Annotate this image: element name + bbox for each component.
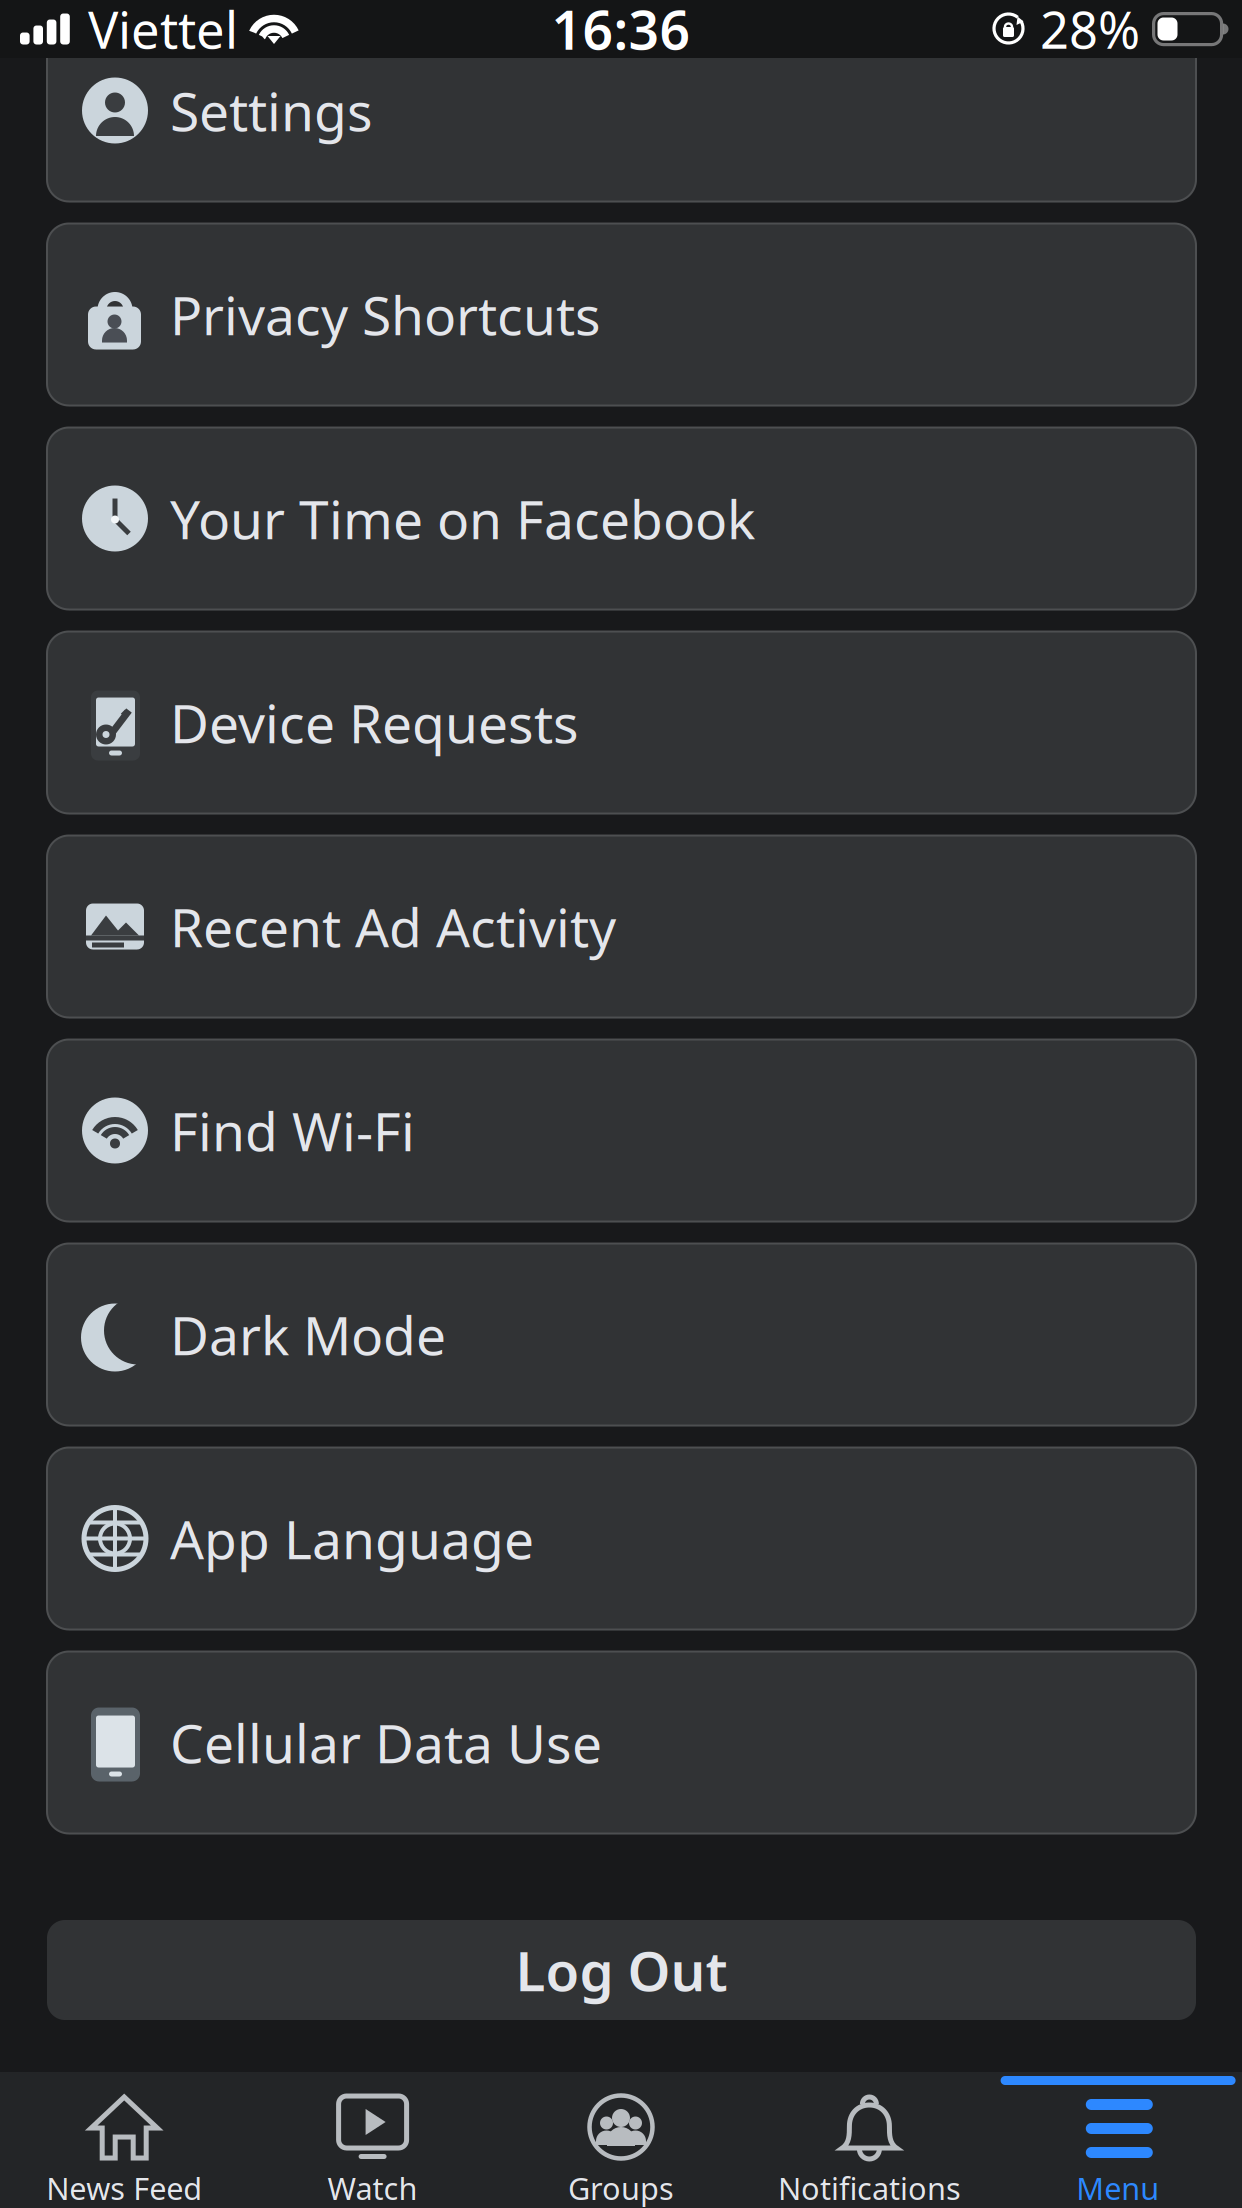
button[interactable]: Privacy Shortcuts — [47, 223, 1196, 405]
staticText: 16:36 — [551, 0, 690, 64]
staticText: 28% — [1040, 0, 1140, 63]
staticText: Log Out — [515, 1934, 727, 2006]
button[interactable]: Groups — [497, 2072, 745, 2208]
button[interactable]: News Feed — [0, 2072, 248, 2208]
button[interactable]: Find Wi-Fi — [47, 1039, 1196, 1221]
button[interactable]: Dark Mode — [47, 1243, 1196, 1425]
staticText: Groups — [568, 2168, 674, 2208]
staticText: Cellular Data Use — [170, 1707, 602, 1778]
staticText: App Language — [170, 1503, 534, 1574]
button[interactable]: Settings — [47, 19, 1196, 201]
staticText: Viettel — [88, 0, 238, 63]
staticText: News Feed — [46, 2168, 202, 2208]
button[interactable]: Your Time on Facebook — [47, 427, 1196, 609]
staticText: Recent Ad Activity — [170, 891, 616, 962]
staticText: Dark Mode — [170, 1299, 446, 1370]
staticText: Device Requests — [170, 687, 579, 758]
button[interactable]: Notifications — [745, 2072, 994, 2208]
button[interactable]: App Language — [47, 1447, 1196, 1629]
button[interactable]: Watch — [248, 2072, 497, 2208]
staticText: Menu — [1076, 2168, 1159, 2208]
staticText: Find Wi-Fi — [170, 1095, 415, 1166]
button[interactable]: Recent Ad Activity — [47, 835, 1196, 1017]
button[interactable]: Cellular Data Use — [47, 1651, 1196, 1833]
button[interactable]: Log Out — [47, 1920, 1196, 2020]
staticText: Your Time on Facebook — [170, 483, 755, 554]
button[interactable]: Device Requests — [47, 631, 1196, 813]
staticText: Privacy Shortcuts — [170, 279, 601, 350]
staticText: Notifications — [778, 2168, 961, 2208]
button[interactable]: Menu — [994, 2072, 1242, 2208]
staticText: Watch — [328, 2168, 418, 2208]
staticText: Settings — [170, 75, 373, 146]
